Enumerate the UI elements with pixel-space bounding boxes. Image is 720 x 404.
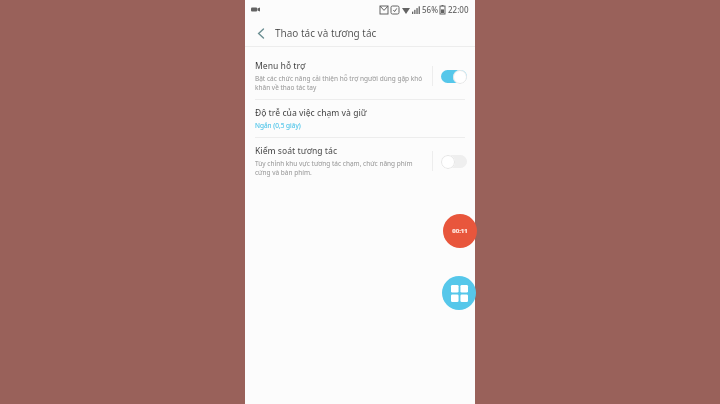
staticText: 22:00 xyxy=(448,4,469,15)
staticText: Tùy chỉnh khu vực tương tác chạm, chức n… xyxy=(255,159,424,177)
staticText: 56% xyxy=(422,4,438,15)
button[interactable]: Recording timer xyxy=(443,214,477,248)
button[interactable]: Độ trễ của việc chạm và giữ xyxy=(245,100,475,137)
staticText: Độ trễ của việc chạm và giữ xyxy=(255,107,367,119)
button[interactable]: Back xyxy=(251,23,271,43)
staticText: Ngắn (0,5 giây) xyxy=(255,121,301,130)
staticText: 00:11 xyxy=(452,227,468,235)
button[interactable]: Toggle on xyxy=(441,69,467,84)
button[interactable]: Kiểm soát tương tác xyxy=(245,138,475,184)
staticText: Bật các chức năng cải thiện hỗ trợ người… xyxy=(255,74,424,92)
button[interactable]: Toggle off xyxy=(441,154,467,169)
staticText: Menu hỗ trợ xyxy=(255,60,306,72)
staticText: Kiểm soát tương tác xyxy=(255,145,338,157)
staticText: Thao tác và tương tác xyxy=(275,26,377,40)
button[interactable]: Menu hỗ trợ xyxy=(245,53,475,99)
button[interactable]: Assistant menu xyxy=(442,276,476,310)
